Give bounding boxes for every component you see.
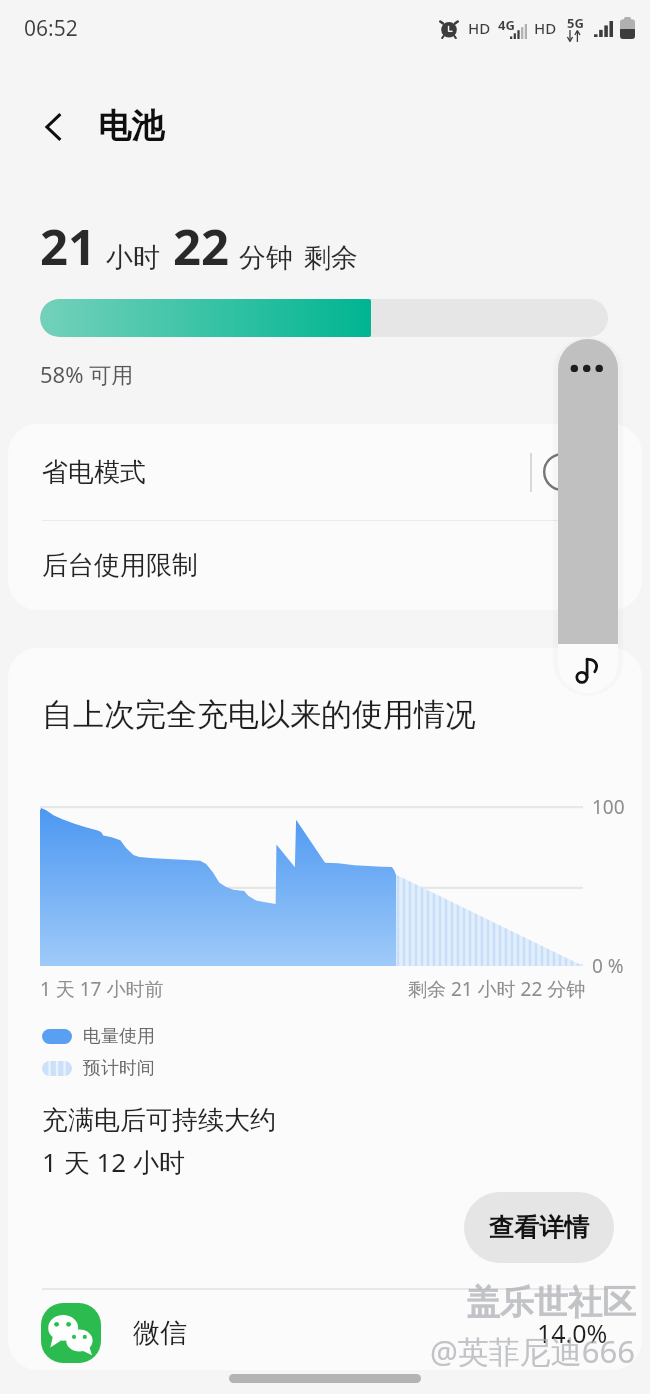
staticText: 剩余 21 小时 22 分钟 [408, 976, 586, 1002]
staticText: 预计时间 [83, 1057, 155, 1080]
staticText: 21 [40, 213, 97, 280]
staticText: 0 % [592, 953, 624, 979]
button[interactable]: Edge panel [558, 339, 618, 645]
staticText: 充满电后可持续大约 [42, 1104, 276, 1137]
staticText: 1 天 12 小时 [42, 1144, 185, 1180]
staticText: @英菲尼迪666 [430, 1330, 636, 1372]
staticText: HD [534, 18, 557, 38]
staticText: 100 [592, 794, 625, 820]
staticText: 06:52 [24, 14, 78, 43]
staticText: 小时 [106, 241, 160, 275]
staticText: 自上次完全充电以来的使用情况 [42, 695, 476, 734]
staticText: HD [468, 18, 491, 38]
button[interactable]: Music [558, 644, 618, 693]
button[interactable]: 查看详情 [464, 1192, 614, 1263]
staticText: 5G [567, 14, 584, 32]
staticText: 电量使用 [83, 1025, 155, 1048]
staticText: 省电模式 [42, 456, 146, 489]
staticText: 查看详情 [489, 1212, 589, 1243]
staticText: 微信 [133, 1316, 187, 1350]
staticText: 58% 可用 [40, 359, 134, 389]
button[interactable]: Back [26, 99, 82, 155]
staticText: 22 [173, 213, 230, 280]
button[interactable]: 省电模式 [8, 424, 642, 520]
staticText: 分钟 [239, 241, 293, 275]
button[interactable]: 后台使用限制 [8, 521, 642, 610]
staticText: 剩余 [304, 241, 358, 275]
staticText: 电池 [98, 105, 164, 147]
staticText: 盖乐世社区 [466, 1281, 636, 1324]
staticText: 4G [498, 16, 515, 34]
staticText: 14.0% [537, 1316, 608, 1350]
staticText: 后台使用限制 [42, 549, 198, 582]
staticText: 1 天 17 小时前 [40, 976, 164, 1002]
button[interactable]: 微信 [8, 1295, 642, 1370]
button[interactable]: Power saving toggle [543, 452, 608, 492]
